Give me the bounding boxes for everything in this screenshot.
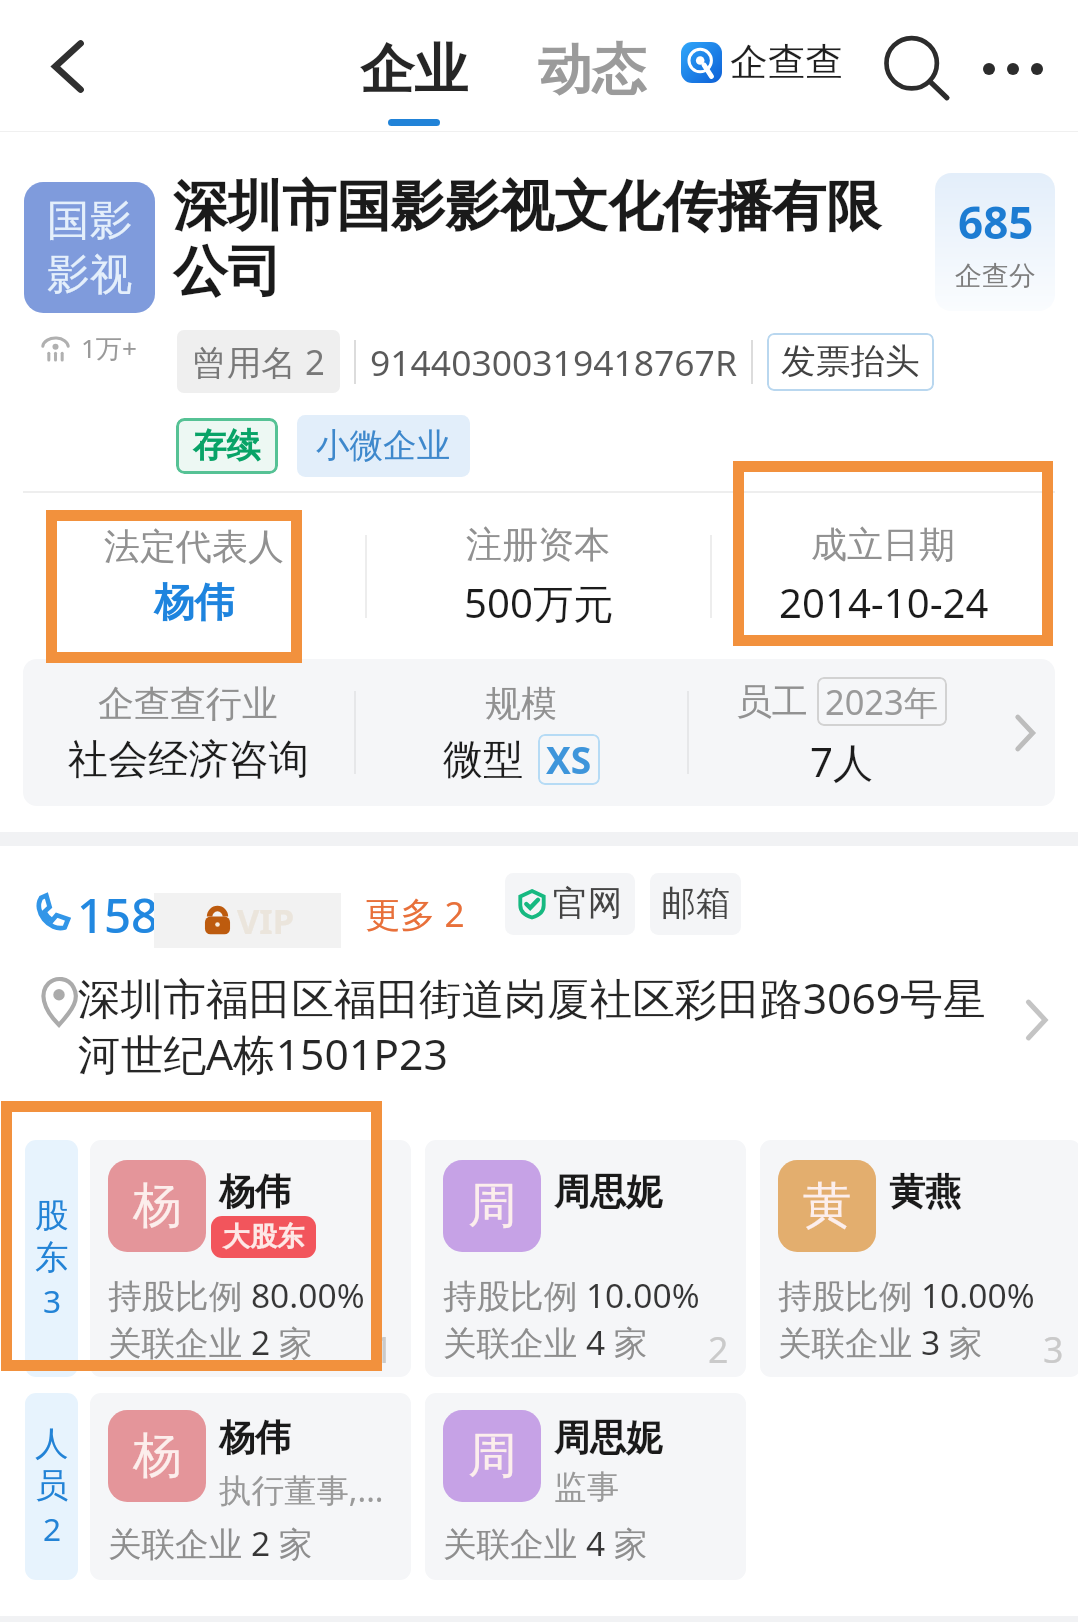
staticText: 关联企业 3 家 [778,1319,983,1365]
button[interactable]: 杨 [90,1393,411,1580]
button[interactable]: 企查查行业 [23,659,1055,806]
staticText: 91440300319418767R [370,338,737,386]
button[interactable]: 规模 [356,681,687,785]
staticText: 持股比例 10.00% [778,1272,1035,1318]
staticText: 社会经济咨询 [68,734,309,785]
button[interactable]: 1万+ [41,330,138,366]
button[interactable]: More options [952,8,1073,129]
button[interactable]: 更多 2 [365,889,465,937]
button[interactable]: 黄 [760,1140,1078,1377]
staticText: 2023年 [825,678,939,725]
button[interactable]: 成立日期 [712,522,1055,630]
staticText: 执行董事,... [219,1467,384,1511]
staticText: 微型 [443,734,524,785]
button[interactable]: 国影 [24,182,155,313]
staticText: 黄 [803,1175,852,1237]
staticText: 人 [35,1423,69,1465]
staticText: 1万+ [81,330,138,366]
staticText: 周思妮 [554,1169,663,1214]
staticText: 周思妮 [554,1415,663,1460]
staticText: 杨 [133,1425,182,1487]
staticText: 官网 [553,882,623,926]
staticText: 关联企业 2 家 [108,1319,313,1365]
button[interactable]: Search [855,8,976,129]
staticText: 关联企业 4 家 [443,1319,648,1365]
button[interactable]: 股 [25,1140,78,1377]
staticText: 158 [77,882,159,946]
button[interactable]: 158 [0,846,1078,1140]
staticText: 周 [468,1425,517,1487]
button[interactable]: 发票抬头 [767,333,934,391]
staticText: 大股东 [223,1220,304,1254]
button[interactable]: 企查查行业 [23,681,354,785]
staticText: 规模 [485,681,558,726]
staticText: 成立日期 [811,522,956,567]
staticText: 东 [35,1237,69,1279]
button[interactable]: 小微企业 [297,415,470,477]
staticText: 杨 [133,1175,182,1237]
staticText: 685 [958,192,1034,252]
staticText: 企业 [360,36,468,104]
button[interactable]: 周 [425,1140,746,1377]
staticText: 邮箱 [661,882,731,926]
button[interactable]: 685 [935,173,1055,311]
staticText: 注册资本 [466,522,611,567]
staticText: 监事 [554,1467,619,1508]
staticText: 杨伟 [219,1415,292,1460]
staticText: 动态 [538,36,646,104]
staticText: 影视 [47,248,133,302]
staticText: 1 [373,1325,394,1374]
staticText: XS [546,734,592,785]
button[interactable]: 曾用名 2 [177,330,340,393]
staticText: 法定代表人 [104,524,285,569]
staticText: 员工 [736,679,809,724]
staticText: 存续 [193,425,261,467]
button[interactable]: 注册资本 [367,522,710,630]
staticText: 杨伟 [219,1169,292,1214]
staticText: 3 [1043,1325,1064,1374]
button[interactable]: 企查查 [681,39,844,86]
staticText: 企查分 [955,259,1036,293]
staticText: 曾用名 2 [192,338,325,385]
staticText: 发票抬头 [781,340,920,384]
staticText: 7人 [810,734,874,789]
staticText: 深圳市福田区福田街道岗厦社区彩田路3069号星河世纪A栋1501P23 [78,968,1024,1082]
staticText: 2 [708,1325,729,1374]
button[interactable]: 杨 [90,1140,411,1377]
button[interactable]: 法定代表人 [23,524,365,628]
staticText: 员 [35,1465,69,1507]
staticText: 深圳市国影影视文化传播有限公司 [173,173,894,306]
button[interactable]: 邮箱 [650,873,741,935]
staticText: 更多 2 [365,889,465,937]
button[interactable]: 企业 [360,36,468,126]
button[interactable]: 人 [25,1393,78,1580]
staticText: 持股比例 80.00% [108,1272,365,1318]
staticText: 杨伟 [154,577,235,628]
staticText: VIP [237,897,295,944]
staticText: 企查查 [730,39,844,86]
staticText: 持股比例 10.00% [443,1272,700,1318]
staticText: 2014-10-24 [779,575,989,630]
staticText: 国影 [47,194,133,248]
button[interactable]: 官网 [505,873,635,935]
staticText: 股 [35,1195,69,1237]
staticText: 2 [43,1507,62,1550]
button[interactable]: Back [8,6,129,127]
staticText: 周 [468,1175,517,1237]
staticText: 500万元 [464,575,614,630]
staticText: 3 [43,1279,62,1322]
staticText: 关联企业 4 家 [443,1520,648,1566]
staticText: 小微企业 [316,425,451,467]
button[interactable]: 动态 [538,36,646,104]
staticText: 关联企业 2 家 [108,1520,313,1566]
staticText: 黄燕 [889,1169,962,1214]
button[interactable]: 周 [425,1393,746,1580]
staticText: 企查查行业 [98,681,279,726]
button[interactable]: 员工 [689,677,994,789]
button[interactable]: 存续 [176,418,278,474]
